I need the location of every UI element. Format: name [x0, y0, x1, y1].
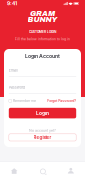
staticText: Login Account	[25, 53, 60, 59]
button[interactable]: Home	[0, 162, 28, 180]
button[interactable]: Register	[9, 134, 76, 141]
staticText: CUSTOMER LOGIN	[29, 30, 56, 34]
button[interactable]: Login	[9, 108, 76, 118]
staticText: No account yet?	[29, 128, 56, 133]
staticText: Register	[33, 135, 51, 140]
staticText: BUNNY	[27, 15, 57, 23]
staticText: Remember me	[13, 99, 36, 103]
staticText: 9:41	[7, 0, 17, 6]
button[interactable]: Forgot Password?	[47, 99, 76, 103]
staticText: Forgot Password?	[47, 99, 76, 103]
staticText: Login	[36, 110, 49, 116]
button[interactable]: Profile	[57, 162, 85, 180]
staticText: GRAM	[30, 9, 55, 17]
staticText: Password	[9, 85, 25, 90]
staticText: Fill the below information to log in	[15, 37, 70, 41]
staticText: Email	[9, 68, 18, 73]
button[interactable]: Remember me	[9, 99, 36, 103]
button[interactable]: Search	[28, 162, 57, 180]
